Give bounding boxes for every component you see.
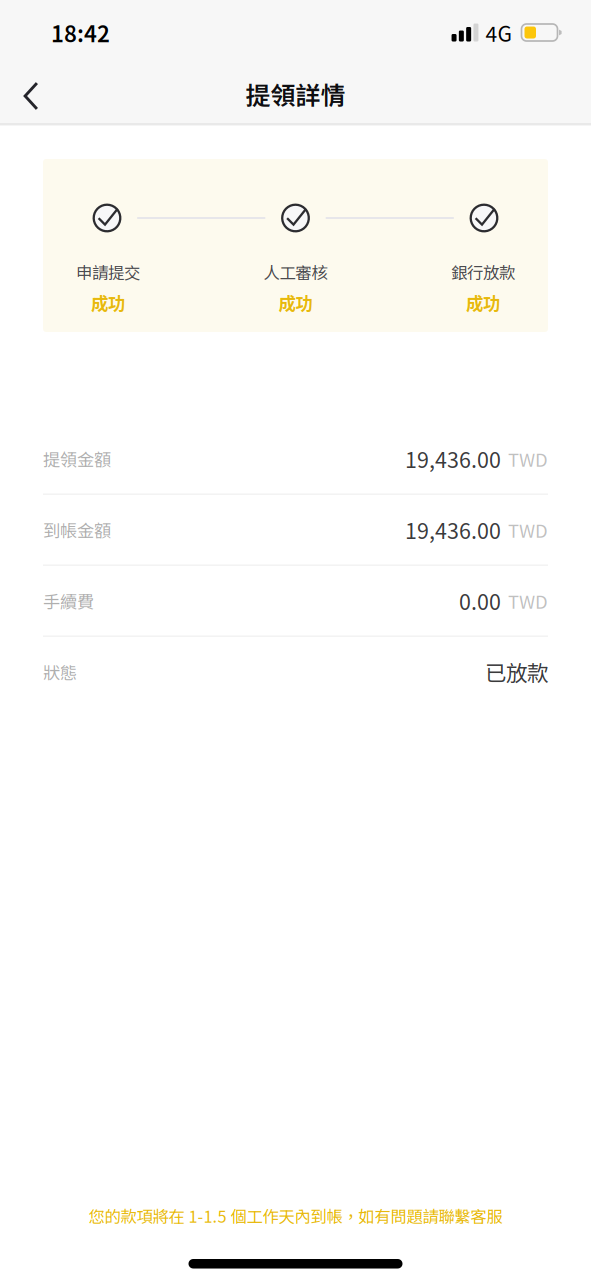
staticText: 19,436.00 bbox=[405, 514, 501, 545]
staticText: 4G bbox=[485, 17, 511, 48]
staticText: 成功 bbox=[91, 290, 125, 315]
staticText: TWD bbox=[508, 587, 548, 614]
staticText: 19,436.00 bbox=[405, 443, 501, 474]
button[interactable]: Back bbox=[0, 65, 76, 123]
staticText: TWD bbox=[508, 445, 548, 472]
staticText: 提領金額 bbox=[43, 446, 111, 471]
staticText: 0.00 bbox=[459, 585, 501, 616]
staticText: 狀態 bbox=[43, 659, 77, 684]
staticText: 申請提交 bbox=[76, 260, 140, 284]
staticText: 您的款項將在 1-1.5 個工作天內到帳，如有問題請聯繫客服 bbox=[88, 1204, 502, 1227]
staticText: 提領詳情 bbox=[245, 76, 345, 112]
staticText: 手續費 bbox=[43, 588, 94, 613]
staticText: 18:42 bbox=[51, 16, 110, 48]
staticText: 到帳金額 bbox=[43, 517, 111, 542]
staticText: 已放款 bbox=[485, 656, 548, 687]
staticText: 成功 bbox=[278, 290, 312, 315]
staticText: 成功 bbox=[466, 290, 500, 315]
staticText: 銀行放款 bbox=[451, 260, 515, 284]
staticText: TWD bbox=[508, 516, 548, 543]
staticText: 人工審核 bbox=[263, 260, 327, 284]
